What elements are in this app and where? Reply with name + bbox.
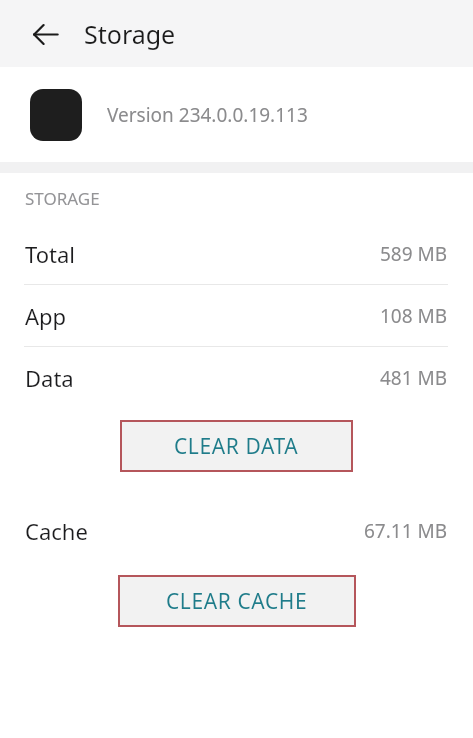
staticText: 108 MB xyxy=(380,303,448,329)
button[interactable]: App xyxy=(0,285,473,346)
staticText: 589 MB xyxy=(380,241,448,267)
staticText: Storage xyxy=(84,17,176,51)
staticText: 481 MB xyxy=(380,365,448,391)
button[interactable]: Data xyxy=(0,347,473,408)
staticText: App xyxy=(25,301,67,331)
button[interactable]: Back xyxy=(19,8,71,60)
staticText: Data xyxy=(25,363,74,393)
button[interactable]: Version 234.0.0.19.113 xyxy=(0,67,473,162)
staticText: 67.11 MB xyxy=(364,518,448,544)
staticText: CLEAR CACHE xyxy=(166,587,308,616)
staticText: Cache xyxy=(25,516,88,546)
staticText: Total xyxy=(25,239,75,269)
staticText: STORAGE xyxy=(25,187,100,210)
staticText: Version 234.0.0.19.113 xyxy=(107,102,308,128)
button[interactable]: CLEAR CACHE xyxy=(118,575,356,627)
staticText: CLEAR DATA xyxy=(174,432,299,461)
button[interactable]: Cache xyxy=(0,500,473,561)
button[interactable]: Total xyxy=(0,223,473,284)
button[interactable]: CLEAR DATA xyxy=(120,420,353,472)
